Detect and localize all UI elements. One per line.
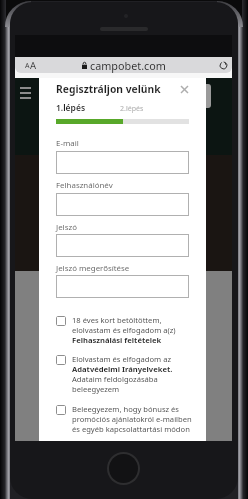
staticText: Adatvédelmi Irányelveket. [72,364,173,374]
staticText: Beleegyezem, hogy bónusz és [72,404,180,414]
staticText: campobet.com [90,58,166,73]
staticText: A [25,61,30,71]
button[interactable]: Jelszó megerősítése [56,275,189,298]
staticText: Jelszó [56,222,77,233]
staticText: Felhasználási feltételek [72,335,162,345]
staticText: Regisztráljon velünk [56,82,161,96]
button[interactable]: Elolvastam és elfogadom az [56,354,206,394]
staticText: A [30,59,37,71]
staticText: 1.lépés [56,102,86,114]
staticText: beleegyezem [72,384,120,394]
button[interactable]: Text size [25,59,37,71]
button[interactable]: 18 éves kort betöltöttem, [56,315,206,345]
button[interactable]: Menu [20,87,31,99]
staticText: elolvastam és elfogadom a(z) [72,325,176,335]
staticText: és egyéb kapcsolattartási módon [72,424,190,434]
staticText: Adataim feldolgozásába [72,374,158,384]
button[interactable]: Felhasználónév [56,193,189,216]
button[interactable]: E-mail [56,151,189,174]
staticText: Jelszó megerősítése [56,263,130,274]
staticText: Felhasználónév [56,180,113,191]
staticText: promóciós ajánlatokról e-mailben [72,414,192,424]
button[interactable]: Beleegyezem, hogy bónusz és [56,404,206,434]
staticText: 18 éves kort betöltöttem, [72,315,162,325]
button[interactable]: Home [107,452,140,485]
staticText: E-mail [56,138,79,149]
staticText: Elolvastam és elfogadom az [72,354,172,364]
button[interactable]: Close [176,81,192,97]
button[interactable]: Reload [216,58,230,72]
staticText: 2.lépés [120,104,144,114]
button[interactable]: Jelszó [56,234,189,257]
